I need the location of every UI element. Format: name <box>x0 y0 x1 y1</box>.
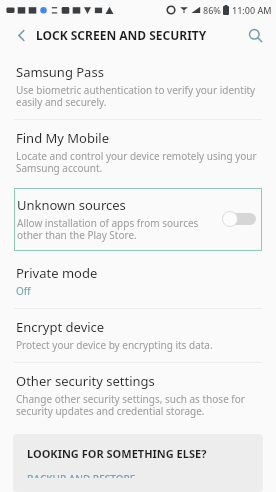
staticText: LOCK SCREEN AND SECURITY <box>36 27 207 43</box>
button[interactable]: BACKUP AND RESTORE <box>27 472 249 478</box>
staticText: Protect your device by encrypting its da… <box>16 338 213 352</box>
staticText: Find My Mobile <box>16 129 110 147</box>
staticText: Off <box>16 284 31 298</box>
button[interactable]: Samsung Pass <box>0 54 276 119</box>
button[interactable]: Back <box>8 22 34 48</box>
staticText: Samsung Pass <box>16 63 104 81</box>
staticText: Use biometric authentication to verify y… <box>16 83 256 109</box>
staticText: Locate and control your device remotely … <box>16 149 257 175</box>
button[interactable]: Unknown sources toggle, off <box>222 211 256 227</box>
button[interactable]: Search <box>242 22 268 48</box>
button[interactable]: Unknown sources <box>14 188 262 251</box>
staticText: Change other security settings, such as … <box>16 392 245 418</box>
staticText: Other security settings <box>16 372 155 390</box>
staticText: LOOKING FOR SOMETHING ELSE? <box>27 446 207 461</box>
staticText: 86% <box>203 4 221 16</box>
staticText: BACKUP AND RESTORE <box>27 472 136 478</box>
staticText: Unknown sources <box>17 196 126 214</box>
staticText: 11:00 AM <box>232 4 272 16</box>
staticText: Encrypt device <box>16 318 105 336</box>
button[interactable]: Find My Mobile <box>0 120 276 185</box>
button[interactable]: Encrypt device <box>0 309 276 362</box>
button[interactable]: Other security settings <box>0 363 276 428</box>
staticText: Allow installation of apps from sources … <box>17 216 199 242</box>
button[interactable]: Private mode <box>0 255 276 308</box>
staticText: Private mode <box>16 264 98 282</box>
